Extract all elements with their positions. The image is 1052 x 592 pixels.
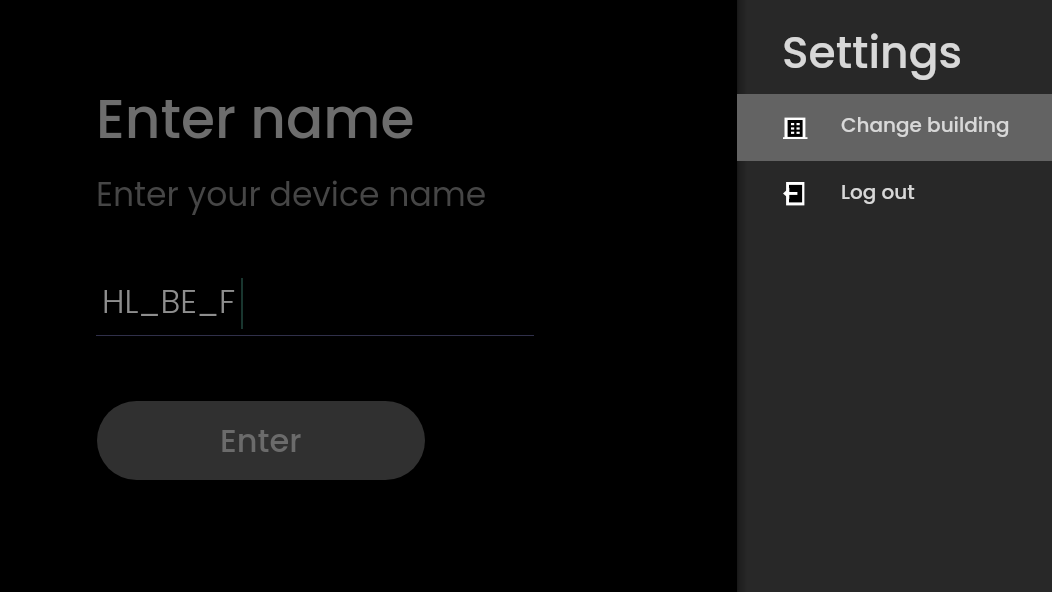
staticText: HL_BE_F [102, 278, 236, 324]
button[interactable]: Change building [737, 94, 1052, 161]
staticText: Enter name [96, 80, 415, 157]
button[interactable]: Enter [97, 401, 425, 480]
staticText: Log out [841, 178, 915, 206]
button[interactable]: Log out [737, 161, 1052, 228]
staticText: Enter your device name [96, 171, 487, 217]
staticText: Settings [782, 22, 962, 84]
staticText: Enter [220, 418, 302, 463]
staticText: Change building [841, 111, 1010, 139]
other: Change building [783, 116, 808, 139]
other: Log out [783, 182, 805, 206]
